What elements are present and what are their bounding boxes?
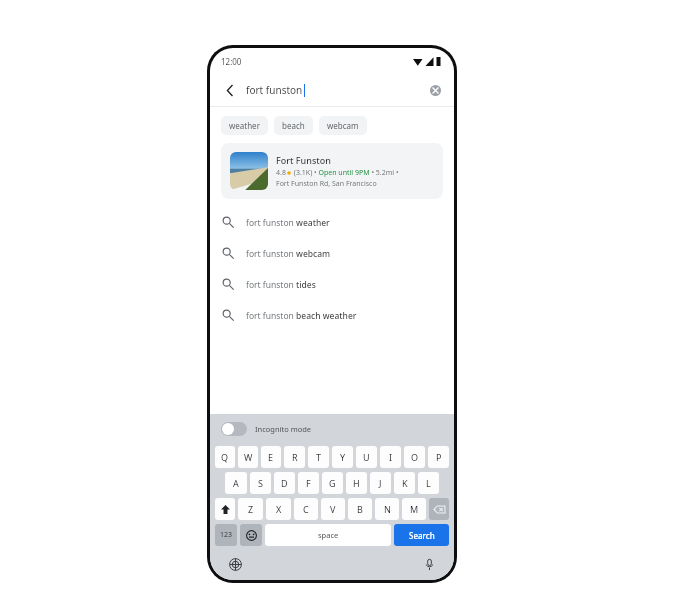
button[interactable]: Voice input bbox=[420, 555, 438, 573]
button[interactable]: X bbox=[266, 498, 291, 520]
button[interactable]: beach bbox=[274, 116, 313, 135]
staticText: V bbox=[330, 503, 336, 515]
button[interactable]: fort funston weather bbox=[210, 207, 454, 238]
staticText: G bbox=[329, 477, 336, 489]
staticText: beach bbox=[282, 120, 305, 131]
staticText: Fort Funston bbox=[276, 154, 331, 166]
staticText: (3.1K) • Open until 9PM • 5.2mi • bbox=[292, 168, 399, 178]
staticText: fort funston bbox=[246, 83, 303, 97]
staticText: F bbox=[306, 477, 311, 489]
staticText: webcam bbox=[327, 120, 359, 131]
button[interactable]: J bbox=[370, 472, 391, 494]
staticText: 12:00 bbox=[221, 56, 242, 67]
button[interactable]: W bbox=[238, 446, 258, 468]
button[interactable]: V bbox=[321, 498, 345, 520]
button[interactable]: D bbox=[274, 472, 295, 494]
staticText: H bbox=[353, 477, 360, 489]
staticText: fort funston beach weather bbox=[246, 310, 357, 322]
button[interactable]: E bbox=[261, 446, 281, 468]
button[interactable]: Back bbox=[220, 80, 240, 100]
button[interactable]: R bbox=[284, 446, 305, 468]
button[interactable]: B bbox=[348, 498, 372, 520]
button[interactable]: H bbox=[346, 472, 367, 494]
button[interactable]: Shift bbox=[215, 498, 235, 520]
staticText: E bbox=[268, 451, 274, 463]
staticText: Incognito mode bbox=[255, 424, 312, 434]
staticText: fort funston webcam bbox=[246, 248, 331, 260]
staticText: O bbox=[411, 451, 419, 463]
staticText: Fort Funston Rd, San Francisco bbox=[276, 179, 377, 189]
staticText: fort funston tides bbox=[246, 279, 316, 291]
button[interactable]: Incognito mode toggle bbox=[221, 422, 247, 436]
staticText: Search bbox=[409, 530, 435, 541]
staticText: K bbox=[402, 477, 408, 489]
button[interactable]: K bbox=[394, 472, 415, 494]
staticText: A bbox=[233, 477, 239, 489]
button[interactable]: A bbox=[225, 472, 247, 494]
button[interactable]: I bbox=[380, 446, 401, 468]
button[interactable]: Search bbox=[394, 524, 449, 546]
staticText: X bbox=[276, 503, 282, 515]
button[interactable]: space bbox=[265, 524, 391, 546]
button[interactable]: T bbox=[308, 446, 329, 468]
button[interactable]: weather bbox=[221, 116, 268, 135]
staticText: D bbox=[281, 477, 288, 489]
button[interactable]: Emoji bbox=[240, 524, 262, 546]
button[interactable]: Z bbox=[238, 498, 263, 520]
staticText: P bbox=[436, 451, 442, 463]
button[interactable]: Backspace bbox=[429, 498, 449, 520]
button[interactable]: Fort Funston bbox=[221, 143, 443, 199]
staticText: J bbox=[379, 477, 382, 489]
staticText: Q bbox=[221, 451, 229, 463]
button[interactable]: M bbox=[402, 498, 426, 520]
staticText: Y bbox=[340, 451, 346, 463]
staticText: W bbox=[244, 451, 253, 463]
button[interactable]: N bbox=[375, 498, 399, 520]
staticText: I bbox=[389, 451, 393, 463]
button[interactable]: L bbox=[418, 472, 439, 494]
button[interactable]: webcam bbox=[319, 116, 367, 135]
button[interactable]: U bbox=[356, 446, 377, 468]
staticText: S bbox=[258, 477, 263, 489]
button[interactable]: fort funston webcam bbox=[210, 238, 454, 269]
staticText: 123 bbox=[220, 530, 233, 540]
button[interactable]: Change language bbox=[226, 555, 244, 573]
staticText: B bbox=[357, 503, 363, 515]
button[interactable]: F bbox=[298, 472, 319, 494]
staticText: M bbox=[410, 503, 419, 515]
staticText: R bbox=[292, 451, 298, 463]
staticText: C bbox=[303, 503, 309, 515]
button[interactable]: 123 bbox=[215, 524, 237, 546]
staticText: weather bbox=[229, 120, 260, 131]
staticText: space bbox=[318, 530, 339, 540]
button[interactable]: G bbox=[322, 472, 343, 494]
button[interactable]: C bbox=[294, 498, 318, 520]
button[interactable]: P bbox=[428, 446, 449, 468]
button[interactable]: fort funston beach weather bbox=[210, 300, 454, 331]
button[interactable]: Clear search bbox=[426, 81, 444, 99]
button[interactable]: fort funston tides bbox=[210, 269, 454, 300]
staticText: L bbox=[426, 477, 431, 489]
button[interactable]: O bbox=[404, 446, 425, 468]
staticText: fort funston weather bbox=[246, 217, 330, 229]
staticText: T bbox=[316, 451, 322, 463]
button[interactable]: Y bbox=[332, 446, 353, 468]
staticText: 4.8 bbox=[276, 168, 286, 178]
button[interactable]: S bbox=[250, 472, 271, 494]
staticText: N bbox=[384, 503, 391, 515]
staticText: Z bbox=[248, 503, 254, 515]
staticText: U bbox=[363, 451, 370, 463]
button[interactable]: Q bbox=[215, 446, 235, 468]
